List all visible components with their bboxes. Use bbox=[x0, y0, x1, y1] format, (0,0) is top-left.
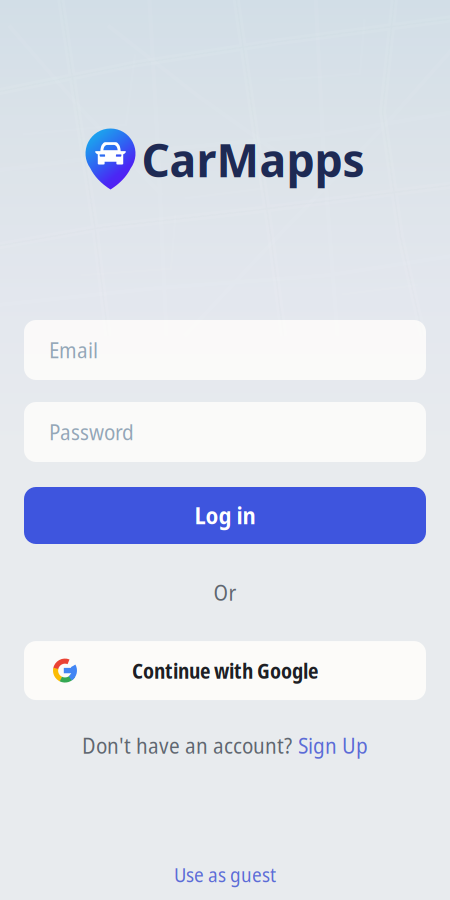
button[interactable]: Log in bbox=[24, 487, 426, 544]
staticText: Sign Up bbox=[298, 731, 368, 760]
staticText: Email bbox=[49, 335, 98, 365]
staticText: Continue with Google bbox=[132, 656, 318, 685]
staticText: Password bbox=[49, 417, 134, 447]
staticText: Use as guest bbox=[174, 862, 276, 888]
staticText: CarMapps bbox=[141, 127, 364, 191]
button[interactable]: Use as guest bbox=[174, 862, 276, 888]
button[interactable]: Sign Up bbox=[298, 731, 368, 760]
button[interactable]: Continue with Google bbox=[24, 641, 426, 700]
staticText: Log in bbox=[194, 500, 255, 531]
staticText: Don't have an account? bbox=[82, 731, 292, 760]
staticText: Or bbox=[213, 578, 236, 607]
